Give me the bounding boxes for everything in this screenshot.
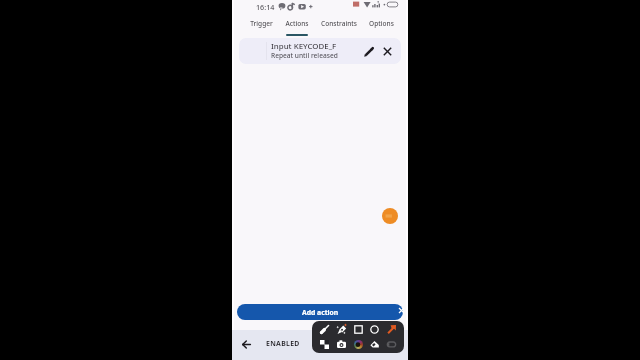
button[interactable]: Mosaic	[318, 338, 331, 351]
button[interactable]: Rectangle	[352, 323, 365, 336]
button[interactable]: Eraser	[368, 338, 381, 351]
button[interactable]: Actions	[279, 14, 315, 37]
button[interactable]: Close toolbar	[395, 304, 407, 316]
button[interactable]: Back	[236, 334, 256, 354]
button[interactable]: Constraints	[315, 14, 363, 37]
button[interactable]: Input KEYCODE_F	[239, 38, 401, 64]
button[interactable]: Colour	[352, 338, 365, 351]
button[interactable]: Undo	[385, 338, 398, 351]
button[interactable]: Edit action	[361, 44, 376, 59]
staticText: Input KEYCODE_F	[271, 41, 337, 52]
button[interactable]: Options	[363, 14, 400, 37]
button[interactable]: Screenshot	[335, 338, 348, 351]
button[interactable]: Trigger	[244, 14, 279, 37]
button[interactable]: Ellipse	[368, 323, 381, 336]
staticText: Actions	[285, 19, 309, 28]
button[interactable]: Add action	[237, 304, 403, 320]
button[interactable]: ENABLED	[257, 335, 309, 351]
staticText: Constraints	[321, 19, 357, 28]
staticText: ENABLED	[266, 339, 300, 348]
staticText: Options	[369, 19, 394, 28]
staticText: Repeat until released	[271, 51, 338, 60]
button[interactable]: Pen	[318, 323, 331, 336]
staticText: 16:14	[256, 2, 275, 12]
button[interactable]: Arrow	[385, 323, 398, 336]
staticText: Add action	[302, 308, 339, 317]
button[interactable]: Remove action	[380, 44, 395, 59]
button[interactable]: Highlighter	[335, 323, 348, 336]
staticText: Trigger	[250, 19, 273, 28]
button[interactable]: Stop recording	[382, 208, 398, 224]
